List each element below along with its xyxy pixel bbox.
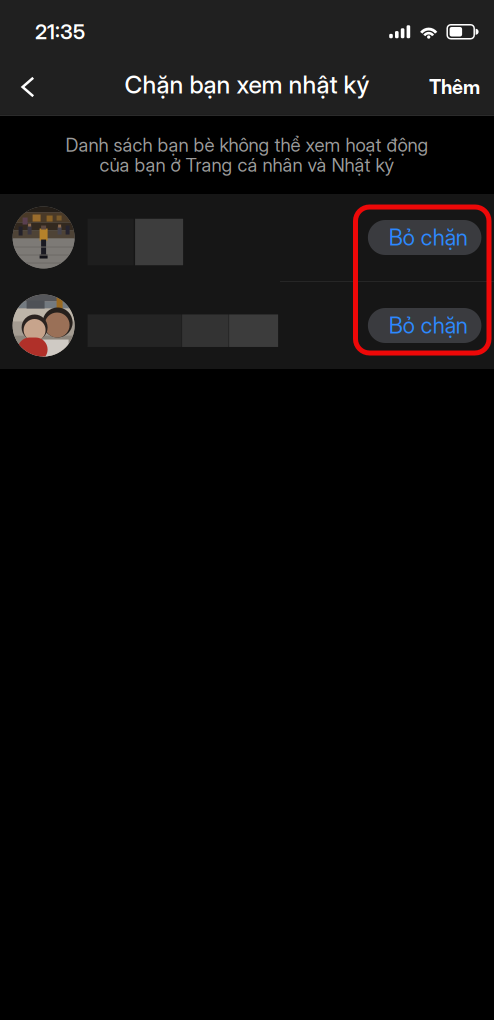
staticText: 21:35 xyxy=(35,19,85,44)
button[interactable]: Thêm xyxy=(415,56,494,114)
staticText: Bỏ chặn xyxy=(389,312,468,339)
button[interactable]: Bỏ chặn xyxy=(368,308,481,343)
button[interactable]: Back xyxy=(0,56,56,114)
staticText: của bạn ở Trang cá nhân và Nhật ký xyxy=(99,154,394,176)
staticText: Bỏ chặn xyxy=(389,224,468,251)
staticText: Thêm xyxy=(429,75,480,99)
staticText: Chặn bạn xem nhật ký xyxy=(124,70,369,99)
button[interactable]: Bỏ chặn xyxy=(368,220,481,255)
staticText: Danh sách bạn bè không thể xem hoạt động xyxy=(65,134,428,156)
